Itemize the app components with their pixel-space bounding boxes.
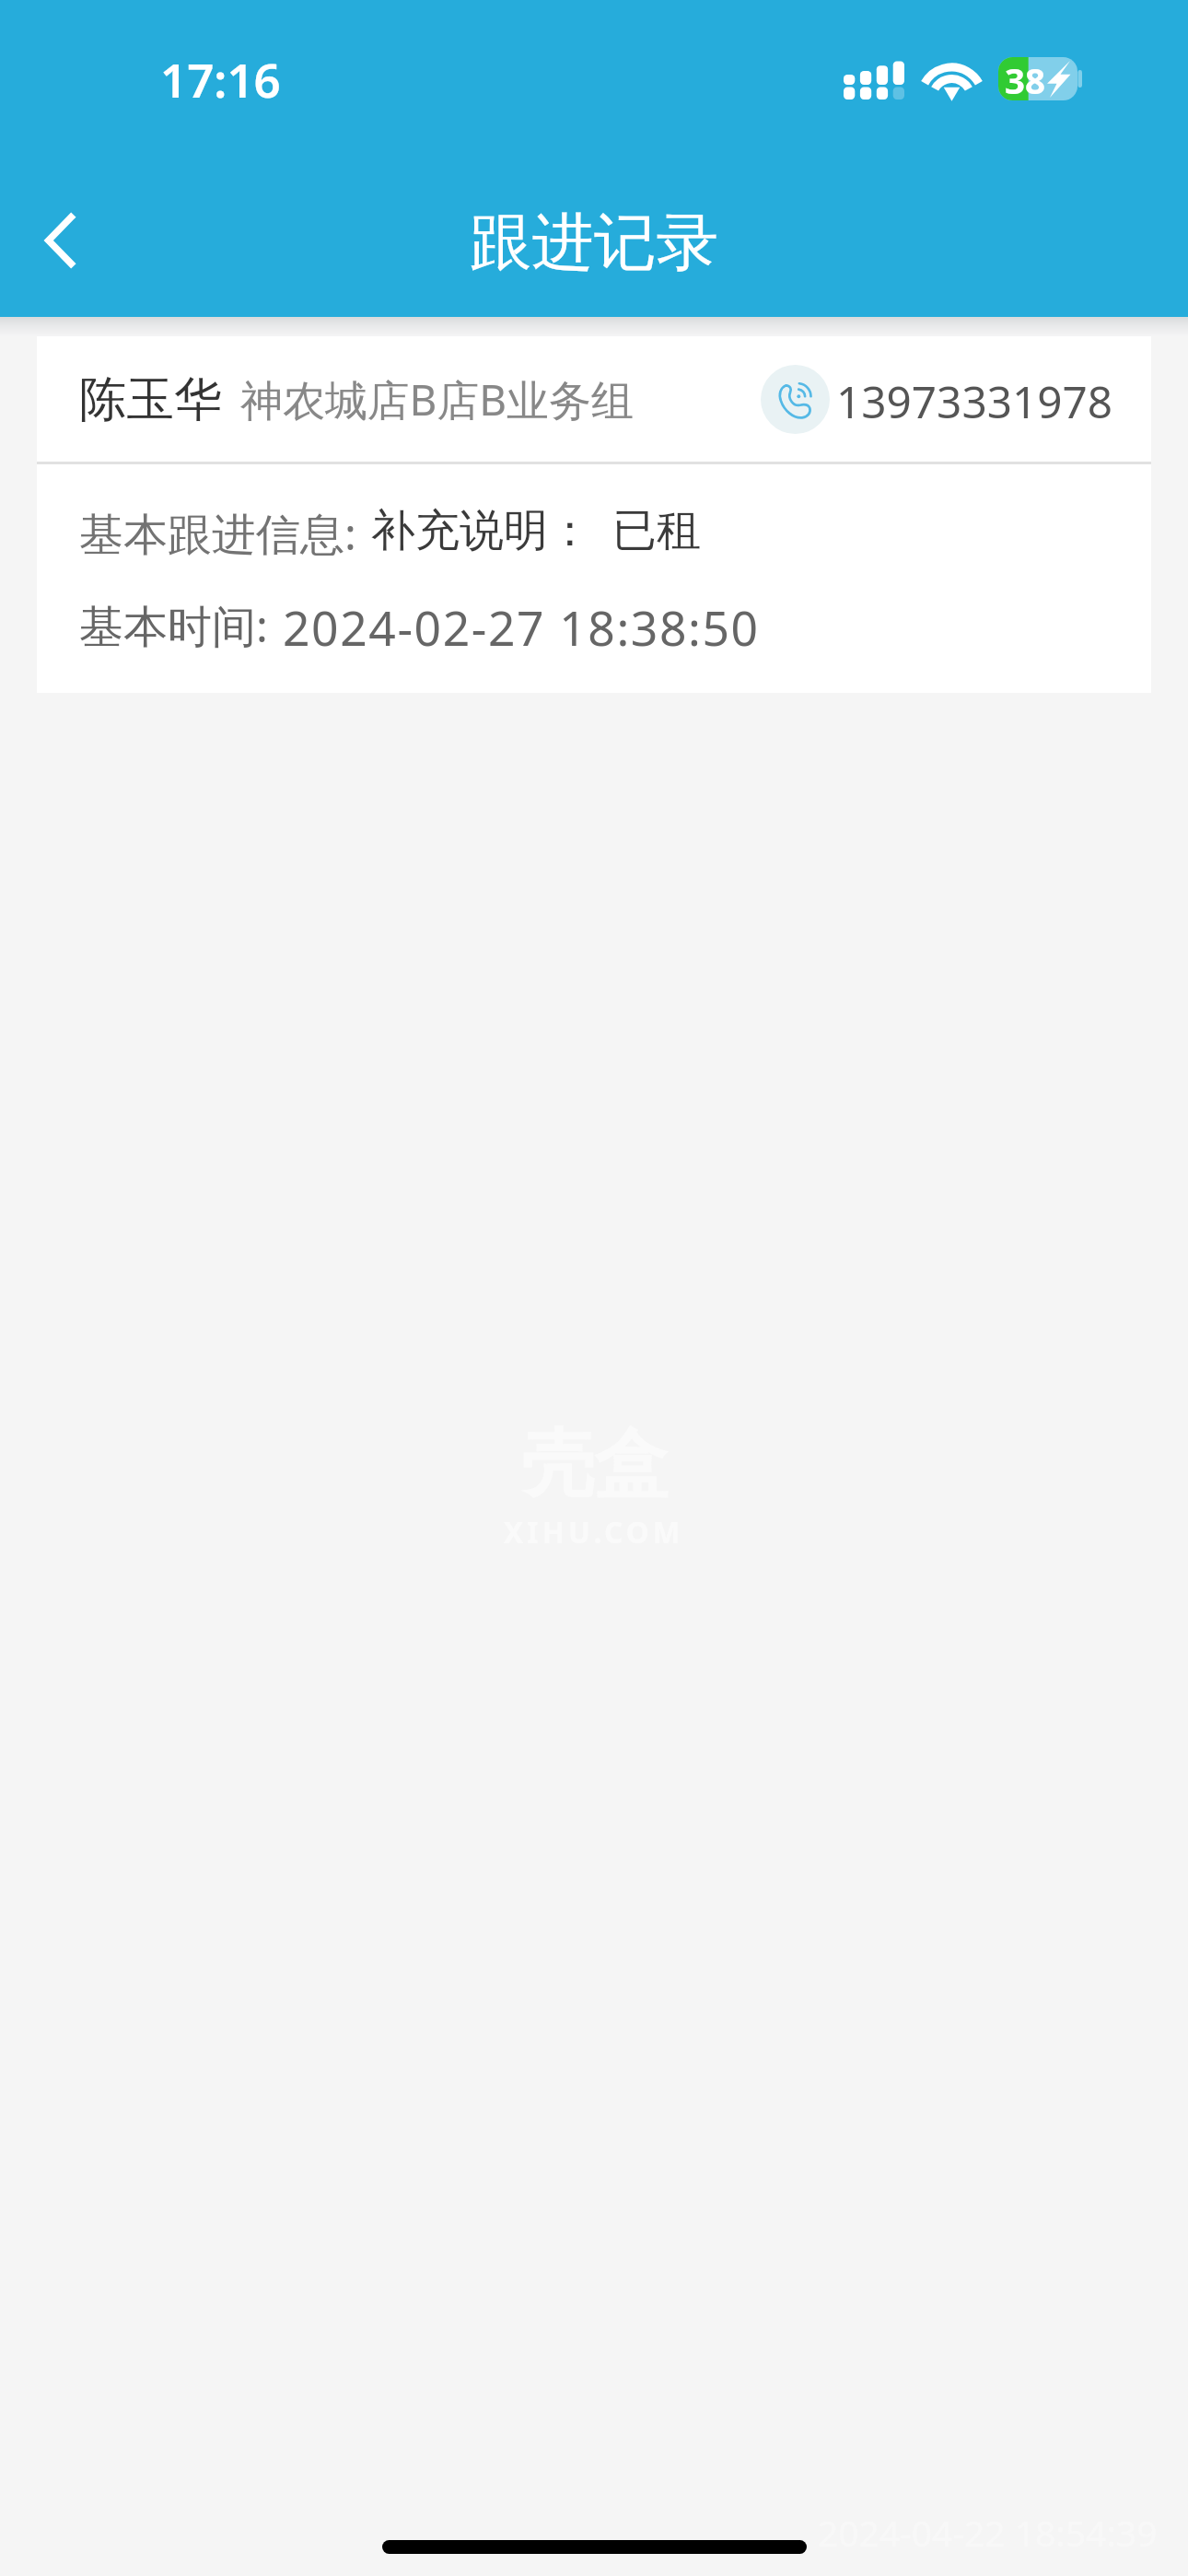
staticText: 跟进记录 bbox=[470, 204, 718, 282]
staticText: 已租 bbox=[612, 503, 701, 558]
staticText: 2024-02-27 18:38:50 bbox=[283, 595, 760, 660]
button[interactable]: 13973331978 bbox=[836, 371, 1113, 431]
button[interactable]: Call 13973331978 bbox=[761, 365, 830, 434]
staticText: 补充说明： bbox=[371, 503, 592, 558]
staticText: 38 bbox=[1005, 56, 1045, 100]
button[interactable]: 陈玉华 bbox=[37, 336, 1151, 462]
staticText: 基本跟进信息: bbox=[79, 503, 356, 564]
staticText: 基本时间: bbox=[79, 595, 268, 656]
staticText: 17:16 bbox=[160, 47, 281, 111]
staticText: 神农城店B店B业务组 bbox=[240, 370, 634, 428]
staticText: 陈玉华 bbox=[79, 369, 222, 429]
button[interactable]: Back bbox=[0, 169, 120, 312]
